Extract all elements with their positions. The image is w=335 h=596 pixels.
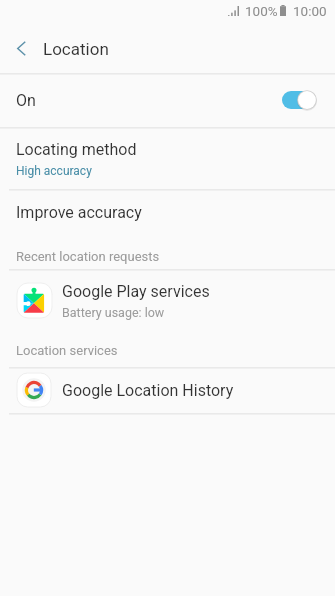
staticText: Improve accuracy — [16, 203, 142, 222]
button[interactable]: Google Play services — [0, 270, 335, 332]
staticText: Location services — [16, 343, 118, 358]
button[interactable]: On — [0, 74, 335, 127]
staticText: Battery usage: low — [62, 305, 165, 320]
staticText: 100% — [245, 3, 278, 19]
button[interactable]: Location — [43, 26, 109, 73]
staticText: Recent location requests — [16, 249, 160, 264]
staticText: On — [16, 91, 36, 110]
button[interactable]: Improve accuracy — [0, 190, 335, 235]
button[interactable]: Locating method — [0, 128, 335, 189]
staticText: 10:00 — [293, 3, 327, 19]
staticText: Locating method — [16, 140, 137, 159]
button[interactable]: Navigate up — [0, 26, 43, 73]
button[interactable]: Google Location History — [0, 368, 335, 413]
staticText: Google Play services — [62, 282, 210, 301]
staticText: Google Location History — [62, 381, 234, 400]
staticText: High accuracy — [16, 164, 92, 178]
staticText: Location — [43, 39, 109, 59]
